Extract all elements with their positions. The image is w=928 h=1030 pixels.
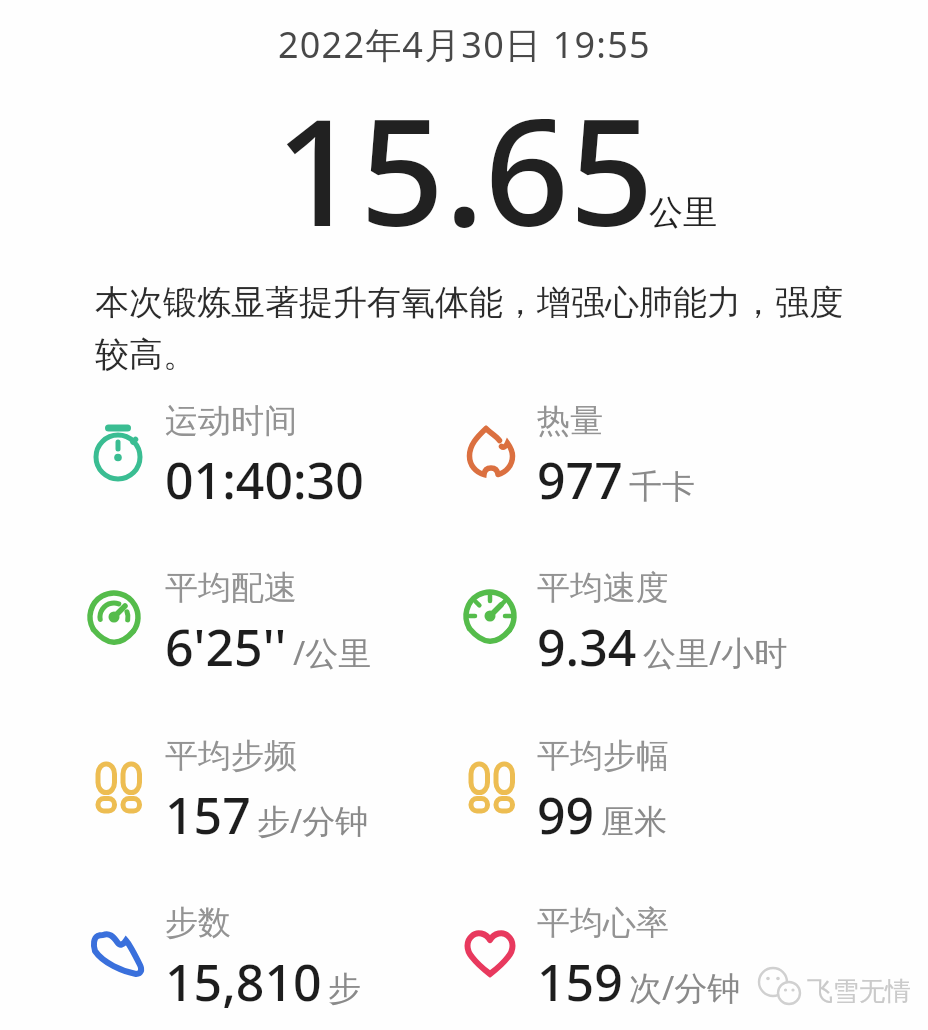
staticText: 平均步频 <box>165 735 297 777</box>
staticText: 9.34 <box>537 613 637 681</box>
staticText: 01:40:30 <box>165 446 364 514</box>
staticText: 159 <box>537 948 623 1016</box>
staticText: 飞雪无情 <box>807 975 911 1008</box>
staticText: 步数 <box>165 902 231 944</box>
staticText: 平均步幅 <box>537 735 669 777</box>
staticText: 157 <box>165 781 251 849</box>
staticText: 厘米 <box>601 801 667 843</box>
staticText: 千卡 <box>629 466 695 508</box>
staticText: /公里 <box>293 630 372 675</box>
staticText: 2022年4月30日 19:55 <box>278 20 651 69</box>
staticText: 热量 <box>537 400 603 442</box>
staticText: 15.65 <box>275 68 654 270</box>
staticText: 运动时间 <box>165 400 297 442</box>
staticText: 平均心率 <box>537 902 669 944</box>
staticText: 99 <box>537 781 595 849</box>
staticText: 977 <box>537 446 623 514</box>
staticText: 次/分钟 <box>629 965 741 1010</box>
staticText: 公里 <box>649 191 717 234</box>
staticText: 6'25'' <box>165 613 287 681</box>
staticText: 平均速度 <box>537 567 669 609</box>
staticText: 公里/小时 <box>643 630 788 675</box>
staticText: 步/分钟 <box>257 798 369 843</box>
staticText: 平均配速 <box>165 567 297 609</box>
staticText: 本次锻炼显著提升有氧体能，增强心肺能力，强度较高。 <box>95 281 851 376</box>
staticText: 步 <box>328 968 361 1010</box>
staticText: 15,810 <box>165 948 322 1016</box>
